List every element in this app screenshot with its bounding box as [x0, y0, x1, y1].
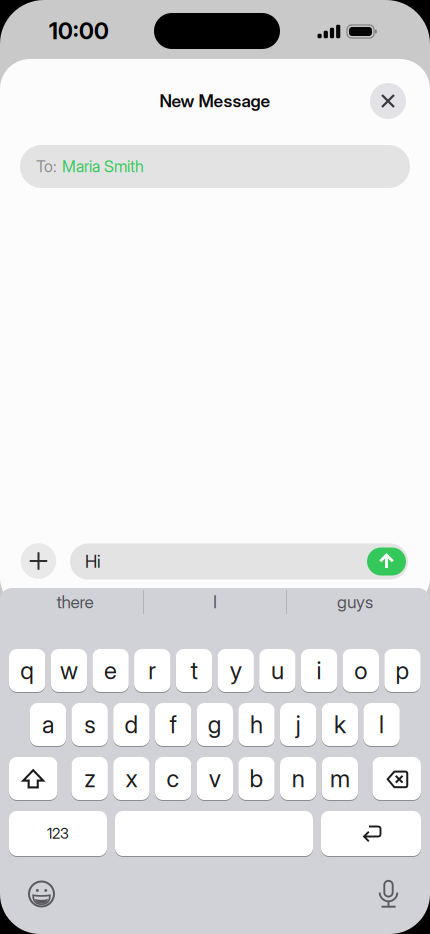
button[interactable]: t	[176, 648, 212, 692]
staticText: Maria Smith	[62, 157, 144, 176]
staticText: w	[60, 656, 78, 685]
staticText: y	[230, 656, 242, 685]
button[interactable]	[21, 543, 56, 579]
button[interactable]: guys	[290, 582, 420, 622]
button[interactable]: s	[71, 702, 108, 746]
staticText: k	[334, 710, 346, 739]
staticText: o	[354, 656, 367, 685]
button[interactable]: n	[280, 756, 316, 800]
button[interactable]: d	[113, 702, 150, 746]
button[interactable]	[21, 874, 61, 914]
button[interactable]	[367, 547, 406, 575]
button[interactable]	[321, 810, 421, 856]
button[interactable]	[115, 810, 313, 856]
button[interactable]: i	[301, 648, 337, 692]
button[interactable]	[370, 83, 406, 119]
staticText: z	[84, 764, 95, 793]
staticText: m	[330, 764, 350, 793]
button[interactable]: there	[10, 582, 140, 622]
button[interactable]: b	[238, 756, 275, 800]
button[interactable]	[368, 873, 408, 913]
staticText: i	[317, 656, 322, 685]
staticText: f	[170, 710, 177, 739]
staticText: g	[208, 710, 222, 739]
button[interactable]	[372, 756, 421, 800]
button[interactable]: h	[238, 702, 275, 746]
staticText: u	[271, 656, 284, 685]
staticText: New Message	[159, 91, 270, 111]
staticText: r	[148, 656, 156, 685]
button[interactable]: j	[280, 702, 316, 746]
staticText: v	[209, 764, 221, 793]
button[interactable]: f	[155, 702, 191, 746]
button[interactable]: u	[259, 648, 296, 692]
staticText: n	[292, 764, 305, 793]
button[interactable]: y	[217, 648, 254, 692]
staticText: s	[84, 710, 95, 739]
button[interactable]	[9, 756, 57, 800]
button[interactable]: w	[51, 648, 87, 692]
button[interactable]: g	[197, 702, 233, 746]
button[interactable]: I	[150, 582, 280, 622]
staticText: guys	[337, 592, 373, 612]
staticText: there	[56, 592, 93, 612]
button[interactable]: m	[322, 756, 358, 800]
button[interactable]: v	[197, 756, 233, 800]
button[interactable]: r	[134, 648, 170, 692]
staticText: To:	[36, 157, 57, 176]
staticText: x	[125, 764, 137, 793]
staticText: e	[104, 656, 117, 685]
staticText: a	[42, 710, 54, 739]
button[interactable]: To:	[20, 145, 410, 188]
button[interactable]: x	[113, 756, 150, 800]
staticText: 10:00	[49, 18, 109, 44]
staticText: b	[249, 764, 263, 793]
button[interactable]: e	[92, 648, 129, 692]
button[interactable]: 123	[9, 810, 107, 856]
button[interactable]: z	[71, 756, 108, 800]
staticText: I	[213, 592, 217, 612]
button[interactable]: p	[384, 648, 421, 692]
button[interactable]: q	[9, 648, 45, 692]
button[interactable]: o	[343, 648, 379, 692]
staticText: d	[124, 710, 138, 739]
staticText: j	[296, 710, 301, 739]
staticText: c	[167, 764, 180, 793]
staticText: p	[395, 656, 409, 685]
staticText: h	[250, 710, 263, 739]
button[interactable]: a	[30, 702, 66, 746]
button[interactable]: l	[363, 702, 400, 746]
button[interactable]: k	[322, 702, 358, 746]
staticText: l	[379, 710, 384, 739]
staticText: 123	[47, 825, 69, 842]
staticText: t	[190, 656, 197, 685]
staticText: Hi	[85, 551, 101, 572]
staticText: q	[20, 656, 34, 685]
button[interactable]: c	[155, 756, 191, 800]
